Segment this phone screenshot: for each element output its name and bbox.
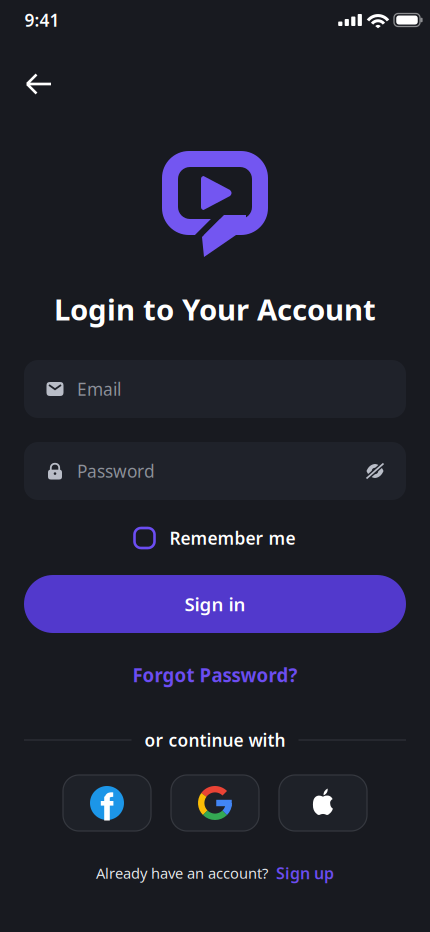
staticText: Login to Your Account — [54, 289, 376, 328]
button[interactable]: Email — [24, 360, 406, 418]
staticText: Remember me — [169, 526, 295, 549]
staticText: Sign in — [184, 592, 245, 616]
button[interactable]: Sign up — [276, 862, 334, 884]
button[interactable]: Forgot Password? — [132, 661, 297, 689]
staticText: Forgot Password? — [132, 663, 297, 687]
button[interactable]: Show password — [364, 461, 386, 481]
button[interactable]: Remember me — [134, 524, 295, 552]
staticText: Sign up — [276, 862, 334, 884]
staticText: Password — [77, 459, 155, 482]
staticText: or continue with — [144, 728, 285, 751]
button[interactable]: Back — [26, 73, 52, 95]
staticText: Email — [77, 377, 121, 400]
staticText: 9:41 — [24, 8, 59, 31]
button[interactable]: Continue with Apple — [279, 775, 367, 831]
button[interactable]: Password — [24, 442, 406, 500]
button[interactable]: Sign in — [24, 575, 406, 633]
button[interactable]: Continue with Google — [171, 775, 259, 831]
staticText: Already have an account? — [96, 863, 268, 883]
button[interactable]: Continue with Facebook — [63, 775, 151, 831]
